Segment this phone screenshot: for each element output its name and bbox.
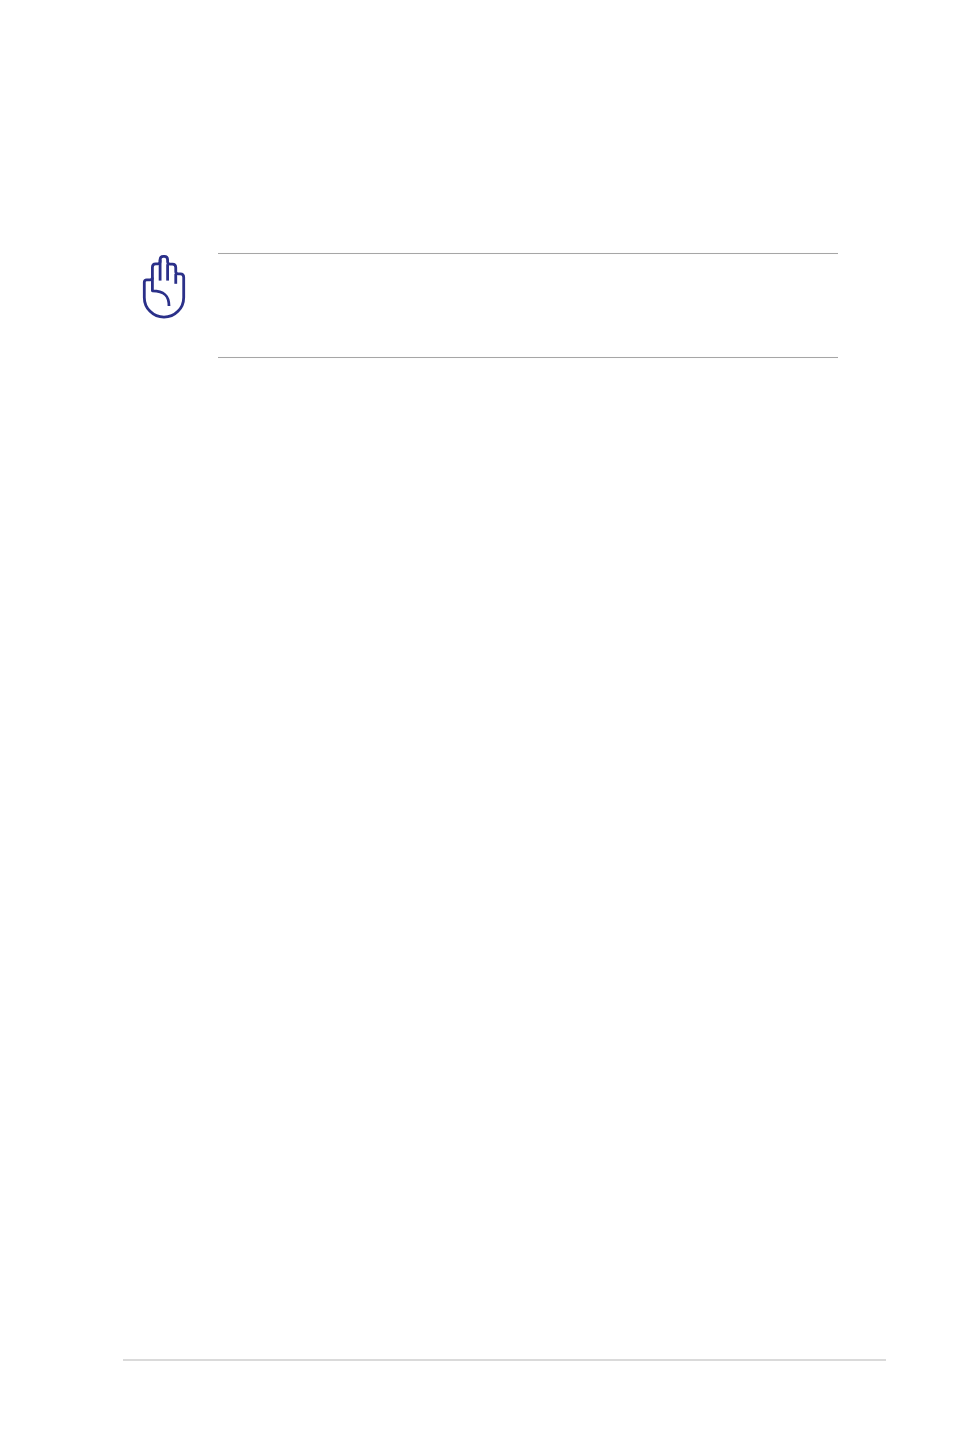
button[interactable]: Important safety note	[140, 252, 188, 322]
